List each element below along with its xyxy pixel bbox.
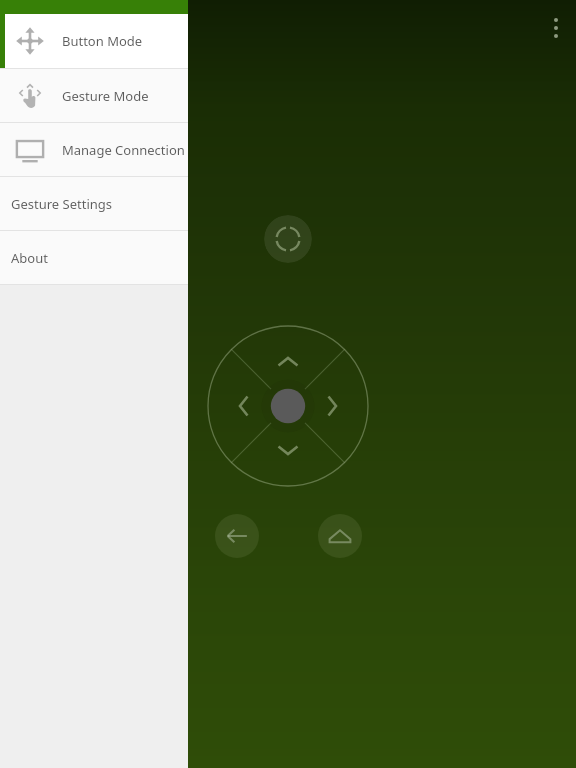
button[interactable]: Left [207,376,257,436]
button[interactable]: Power [264,215,312,263]
staticText: Button Mode [62,32,143,50]
button[interactable]: Manage Connection [0,123,188,176]
button[interactable]: Back [215,514,259,558]
staticText: Gesture Mode [62,87,149,105]
staticText: Gesture Settings [11,195,113,213]
button[interactable]: Down [258,437,318,487]
staticText: About [11,249,48,267]
button[interactable]: Gesture Mode [0,69,188,122]
button[interactable]: Button Mode [0,14,188,68]
button[interactable]: About [0,231,188,284]
button[interactable]: More options [536,8,576,48]
button[interactable]: Gesture Settings [0,177,188,230]
staticText: Manage Connection [62,141,185,159]
button[interactable]: Right [319,376,369,436]
button[interactable]: Select [261,379,315,433]
button[interactable]: Home [318,514,362,558]
button[interactable]: Up [258,325,318,375]
